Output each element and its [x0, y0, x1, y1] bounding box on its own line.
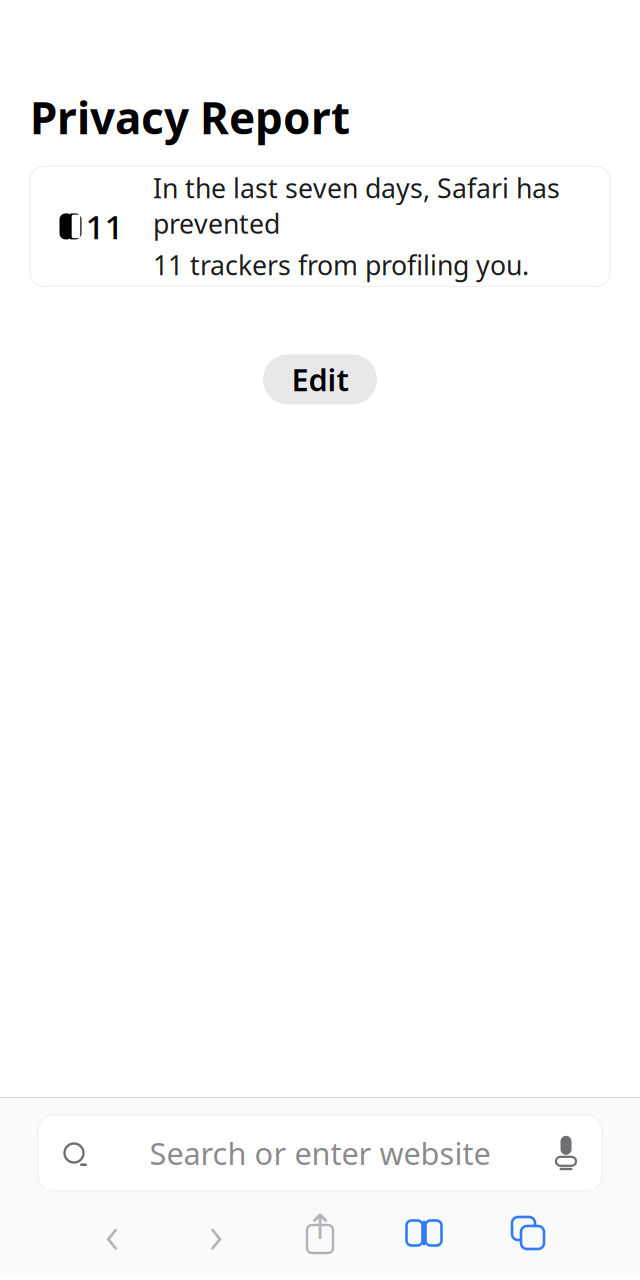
staticText: 11	[85, 204, 123, 249]
button[interactable]: Bookmarks	[372, 1205, 476, 1261]
staticText: ↑	[305, 1207, 334, 1247]
button[interactable]: Tabs	[476, 1205, 580, 1261]
button[interactable]: Share	[268, 1205, 372, 1261]
staticText: ›	[209, 1198, 223, 1268]
staticText: Privacy Report	[30, 88, 350, 146]
staticText: 11 trackers from profiling you.	[153, 247, 529, 282]
button[interactable]: Search or enter website	[38, 1115, 602, 1191]
button[interactable]: Back	[60, 1205, 164, 1261]
button[interactable]: Forward	[164, 1205, 268, 1261]
button[interactable]: Edit	[263, 354, 377, 404]
staticText: In the last seven days, Safari has preve…	[153, 170, 560, 241]
staticText: Search or enter website	[149, 1133, 490, 1173]
staticText: ‹	[105, 1198, 119, 1268]
staticText: Edit	[291, 359, 348, 400]
